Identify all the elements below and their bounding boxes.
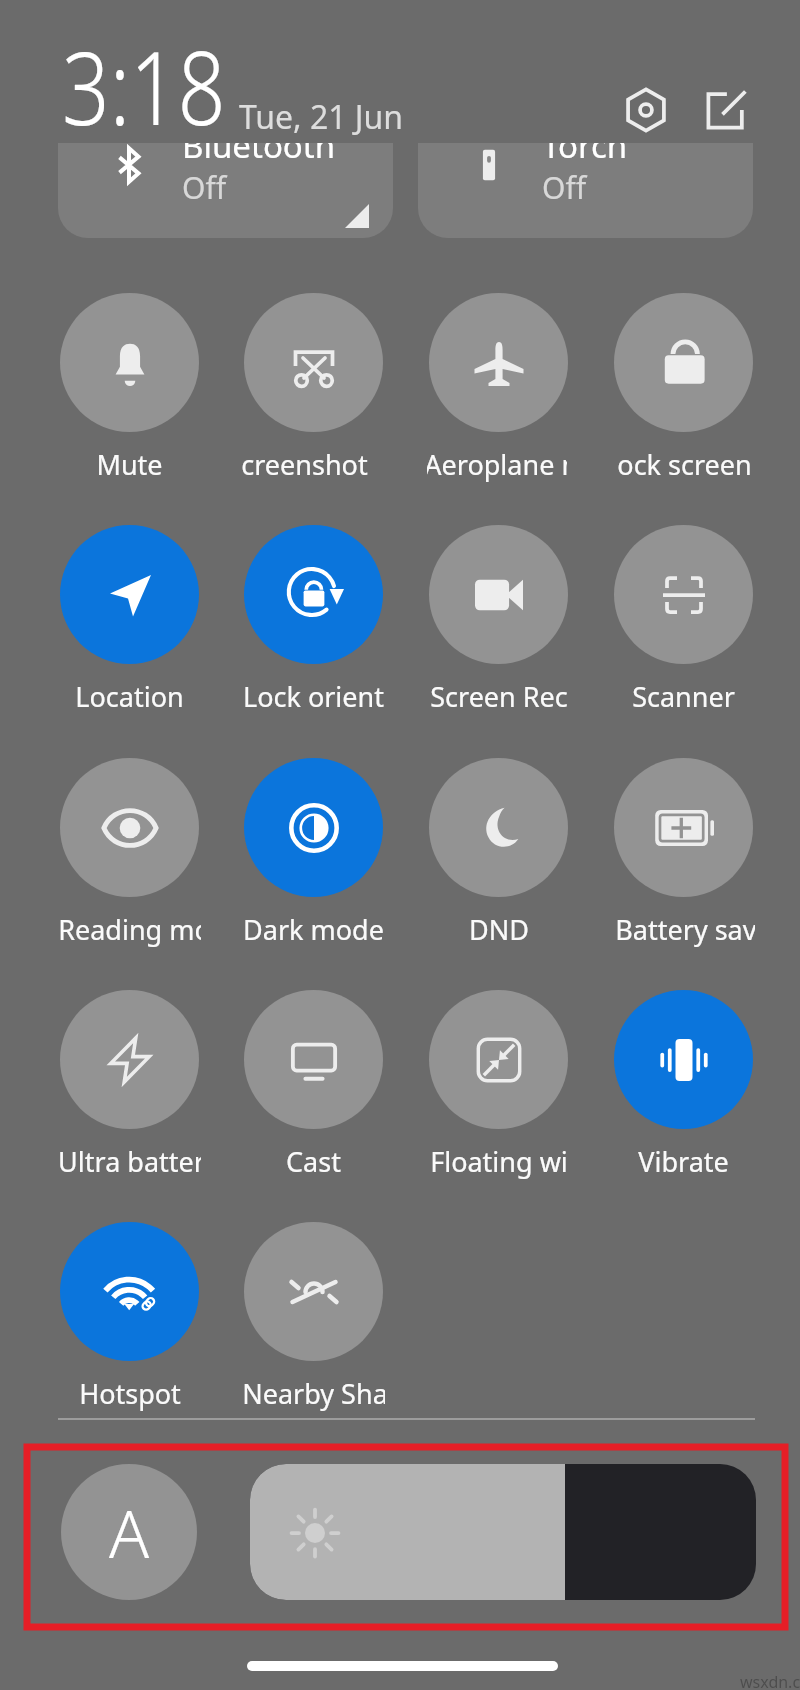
button[interactable]: Torch bbox=[418, 143, 753, 238]
button[interactable]: Cast bbox=[221, 982, 406, 1189]
staticText: Location bbox=[75, 678, 184, 715]
staticText: Mute bbox=[96, 446, 163, 483]
staticText: Ultra batter bbox=[58, 1143, 201, 1180]
staticText: Battery save bbox=[615, 911, 755, 948]
staticText: ock screen bbox=[617, 446, 752, 483]
button[interactable]: Screen Rec bbox=[406, 517, 591, 724]
button[interactable]: Scanner bbox=[591, 517, 776, 724]
button[interactable]: Location bbox=[37, 517, 222, 724]
staticText: creenshot bbox=[242, 446, 368, 483]
staticText: Screen Rec bbox=[430, 678, 568, 715]
button[interactable]: DND bbox=[406, 750, 591, 957]
staticText: 3:18 bbox=[62, 18, 226, 155]
button[interactable]: Reading mo bbox=[37, 750, 222, 957]
button[interactable]: Floating wi bbox=[406, 982, 591, 1189]
staticText: Tue, 21 Jun bbox=[239, 95, 404, 139]
staticText: Dark mode bbox=[243, 911, 384, 948]
button[interactable]: Lock orient bbox=[221, 517, 406, 724]
staticText: Floating wi bbox=[430, 1143, 568, 1180]
button[interactable]: Dark mode bbox=[221, 750, 406, 957]
staticText: Scanner bbox=[632, 678, 735, 715]
staticText: Cast bbox=[286, 1143, 341, 1180]
button[interactable]: Nearby Sha bbox=[221, 1214, 406, 1421]
button[interactable]: creenshot bbox=[221, 285, 406, 492]
button[interactable]: Vibrate bbox=[591, 982, 776, 1189]
button[interactable]: Ultra batter bbox=[37, 982, 222, 1189]
staticText: Nearby Sha bbox=[242, 1375, 385, 1412]
staticText: Off bbox=[542, 167, 587, 208]
staticText: Hotspot bbox=[79, 1375, 181, 1412]
button[interactable]: Bluetooth bbox=[58, 143, 393, 238]
staticText: DND bbox=[469, 911, 529, 948]
button[interactable]: Settings bbox=[608, 72, 684, 148]
button[interactable]: Edit quick settings bbox=[688, 72, 764, 148]
staticText: Off bbox=[182, 167, 227, 208]
button[interactable]: Brightness bbox=[250, 1464, 756, 1600]
button[interactable]: Mute bbox=[37, 285, 222, 492]
button[interactable]: Aeroplane m bbox=[406, 285, 591, 492]
staticText: Vibrate bbox=[638, 1143, 729, 1180]
button[interactable]: Auto brightness bbox=[61, 1464, 197, 1600]
button[interactable]: Battery save bbox=[591, 750, 776, 957]
staticText: Aeroplane m bbox=[427, 446, 567, 483]
staticText: Bluetooth bbox=[182, 143, 336, 168]
staticText: wsxdn.com bbox=[740, 1671, 800, 1690]
staticText: A bbox=[109, 1487, 150, 1577]
staticText: Reading mo bbox=[58, 911, 201, 948]
button[interactable]: Hotspot bbox=[37, 1214, 222, 1421]
button[interactable]: ock screen bbox=[591, 285, 776, 492]
staticText: Torch bbox=[542, 143, 628, 168]
staticText: Lock orient bbox=[243, 678, 384, 715]
